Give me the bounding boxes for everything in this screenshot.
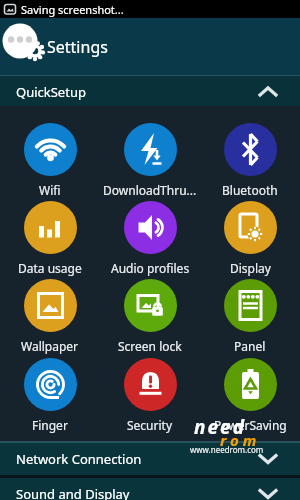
button[interactable]: Network Connection — [0, 443, 300, 475]
staticText: Finger — [32, 417, 68, 433]
staticText: Audio profiles — [111, 260, 190, 276]
staticText: Settings — [47, 36, 108, 58]
button[interactable]: Data usage — [0, 201, 100, 276]
button[interactable]: Security — [100, 358, 200, 433]
staticText: Wallpaper — [21, 338, 79, 354]
staticText: PowerSaving — [214, 417, 287, 433]
button[interactable]: Sound and Display — [0, 478, 300, 500]
button[interactable]: Wallpaper — [0, 279, 100, 354]
staticText: Data usage — [18, 260, 82, 276]
button[interactable]: Settings — [0, 18, 300, 75]
staticText: DownloadThru... — [103, 182, 197, 198]
staticText: Bluetooth — [222, 182, 278, 198]
staticText: Panel — [234, 338, 266, 354]
staticText: Wifi — [39, 182, 61, 198]
staticText: QuickSetup — [16, 83, 86, 101]
button[interactable]: PowerSaving — [200, 358, 300, 433]
button[interactable]: Display — [200, 201, 300, 276]
button[interactable]: Bluetooth — [200, 123, 300, 198]
staticText: Network Connection — [16, 450, 142, 468]
staticText: Sound and Display — [16, 485, 130, 500]
staticText: Security — [127, 417, 173, 433]
button[interactable]: Finger — [0, 358, 100, 433]
button[interactable]: Wifi — [0, 123, 100, 198]
button[interactable]: Audio profiles — [100, 201, 200, 276]
staticText: Display — [230, 260, 271, 276]
button[interactable]: DownloadThru... — [100, 123, 200, 198]
button[interactable]: QuickSetup — [0, 76, 300, 106]
staticText: Saving screenshot... — [21, 2, 124, 17]
button[interactable]: Screen lock — [100, 279, 200, 354]
button[interactable]: Panel — [200, 279, 300, 354]
staticText: rom — [220, 430, 261, 450]
staticText: Screen lock — [118, 338, 182, 354]
staticText: www.needrom.com — [190, 444, 264, 455]
staticText: need — [194, 414, 246, 440]
